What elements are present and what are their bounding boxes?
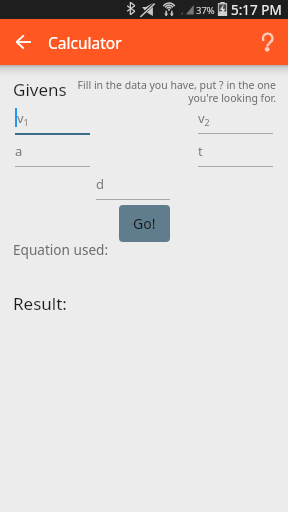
staticText: t — [198, 142, 203, 160]
staticText: v2 — [198, 109, 210, 128]
staticText: v1 — [17, 109, 29, 128]
staticText: d — [96, 175, 104, 193]
staticText: 37% — [196, 4, 215, 17]
button[interactable]: Back — [0, 19, 46, 65]
staticText: Go! — [133, 214, 156, 233]
staticText: Calculator — [48, 32, 122, 53]
staticText: Result: — [13, 292, 67, 315]
button[interactable]: Help — [242, 19, 288, 65]
staticText: Fill in the data you have, put ? in the … — [77, 78, 276, 105]
button[interactable]: Go! — [119, 205, 170, 242]
staticText: 5:17 PM — [231, 1, 282, 19]
staticText: Givens — [13, 78, 67, 101]
staticText: a — [15, 142, 23, 160]
staticText: Equation used: — [13, 240, 109, 259]
